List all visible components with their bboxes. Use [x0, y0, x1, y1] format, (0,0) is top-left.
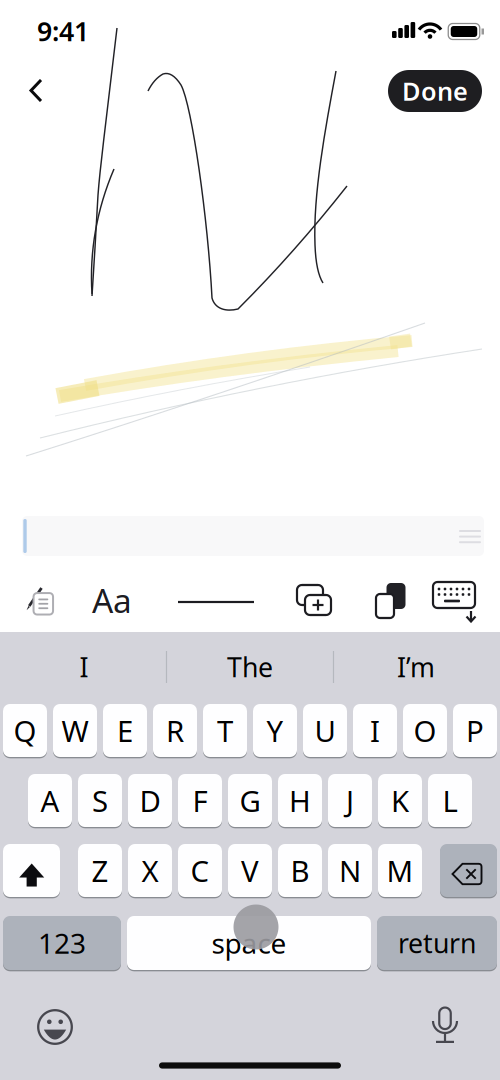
button[interactable]: V	[228, 844, 272, 899]
button[interactable]: Shift	[3, 844, 60, 899]
staticText: Done	[402, 74, 468, 108]
button[interactable]: I	[9, 645, 159, 689]
staticText: Q	[13, 711, 36, 750]
staticText: X	[141, 851, 158, 890]
staticText: P	[466, 711, 484, 750]
button[interactable]: G	[228, 774, 272, 829]
button[interactable]: U	[303, 704, 347, 759]
staticText: return	[398, 925, 476, 961]
button[interactable]: I	[353, 704, 397, 759]
staticText: Z	[91, 851, 108, 890]
button[interactable]: C	[178, 844, 222, 899]
staticText: S	[92, 781, 108, 820]
staticText: F	[192, 781, 207, 820]
staticText: B	[290, 851, 309, 890]
button[interactable]: Add	[293, 581, 337, 621]
button[interactable]: S	[78, 774, 122, 829]
button[interactable]: F	[178, 774, 222, 829]
button[interactable]: Delete	[440, 844, 497, 899]
staticText: The	[227, 649, 273, 685]
staticText: U	[314, 711, 335, 750]
button[interactable]: Dismiss keyboard	[431, 580, 483, 624]
staticText: T	[217, 711, 233, 750]
button[interactable]: Back	[0, 0, 500, 1080]
button[interactable]: Y	[253, 704, 297, 759]
button[interactable]: Emoji	[35, 1007, 75, 1047]
staticText: J	[346, 781, 354, 820]
button[interactable]: Dictate	[425, 1006, 465, 1046]
button[interactable]: X	[128, 844, 172, 899]
staticText: O	[413, 711, 436, 750]
staticText: A	[40, 781, 59, 820]
staticText: G	[239, 781, 260, 820]
staticText: Aa	[92, 578, 132, 622]
staticText: space	[211, 924, 286, 962]
button[interactable]: Text formatting	[87, 580, 137, 620]
button[interactable]: H	[278, 774, 322, 829]
button[interactable]: W	[53, 704, 97, 759]
staticText: R	[166, 711, 184, 750]
button[interactable]: R	[153, 704, 197, 759]
button[interactable]: The	[175, 645, 325, 689]
button[interactable]: M	[378, 844, 422, 899]
staticText: C	[190, 851, 209, 890]
button[interactable]: L	[428, 774, 472, 829]
staticText: W	[61, 711, 88, 750]
button[interactable]: Done	[388, 70, 482, 112]
staticText: D	[139, 781, 160, 820]
button[interactable]: B	[278, 844, 322, 899]
staticText: I	[370, 711, 380, 750]
button[interactable]: return	[377, 916, 497, 972]
button[interactable]: E	[103, 704, 147, 759]
button[interactable]: K	[378, 774, 422, 829]
button[interactable]: N	[328, 844, 372, 899]
button[interactable]: Paste	[368, 581, 412, 621]
button[interactable]: J	[328, 774, 372, 829]
button[interactable]: Z	[78, 844, 122, 899]
staticText: L	[442, 781, 457, 820]
staticText: V	[241, 851, 259, 890]
staticText: I	[79, 649, 88, 685]
button[interactable]: D	[128, 774, 172, 829]
button[interactable]: I’m	[341, 645, 491, 689]
staticText: I’m	[397, 649, 435, 685]
staticText: N	[339, 851, 361, 890]
button[interactable]: P	[453, 704, 497, 759]
staticText: E	[117, 711, 133, 750]
button[interactable]: Q	[3, 704, 47, 759]
button[interactable]: 123	[3, 916, 121, 972]
button[interactable]: Markup	[20, 581, 64, 621]
button[interactable]: space	[127, 916, 371, 972]
button[interactable]: Line style	[176, 582, 256, 622]
staticText: H	[289, 781, 311, 820]
button[interactable]: T	[203, 704, 247, 759]
button[interactable]: A	[28, 774, 72, 829]
staticText: 9:41	[37, 13, 89, 49]
staticText: K	[391, 781, 409, 820]
staticText: M	[386, 851, 413, 890]
button[interactable]: O	[403, 704, 447, 759]
staticText: Y	[266, 711, 283, 750]
staticText: 123	[38, 924, 86, 962]
